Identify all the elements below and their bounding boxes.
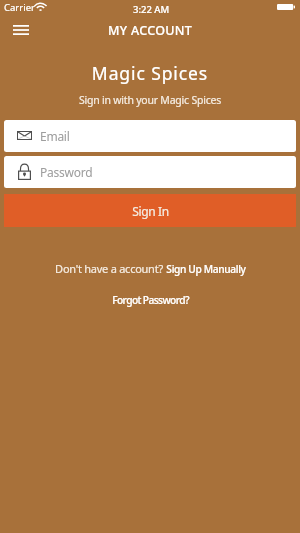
staticText: Forgot Password? <box>112 293 189 307</box>
staticText: Email <box>40 128 70 144</box>
staticText: MY ACCOUNT <box>108 22 193 39</box>
staticText: Carrier <box>4 1 35 14</box>
staticText: Password <box>40 164 93 180</box>
button[interactable]: Sign In <box>4 194 296 227</box>
button[interactable]: Email <box>4 120 296 152</box>
staticText: Magic Spices <box>0 61 300 85</box>
staticText: Don't have a account? <box>55 261 163 276</box>
button[interactable]: Forgot Password? <box>0 293 300 307</box>
staticText: Sign Up Manually <box>166 262 246 276</box>
button[interactable]: Password <box>4 156 296 188</box>
button[interactable]: Open navigation menu <box>7 17 35 43</box>
staticText: Sign In <box>132 203 169 219</box>
button[interactable]: Sign Up Manually <box>166 262 246 276</box>
staticText: 3:22 AM <box>133 3 170 16</box>
staticText: Sign in with your Magic Spices <box>0 93 300 107</box>
